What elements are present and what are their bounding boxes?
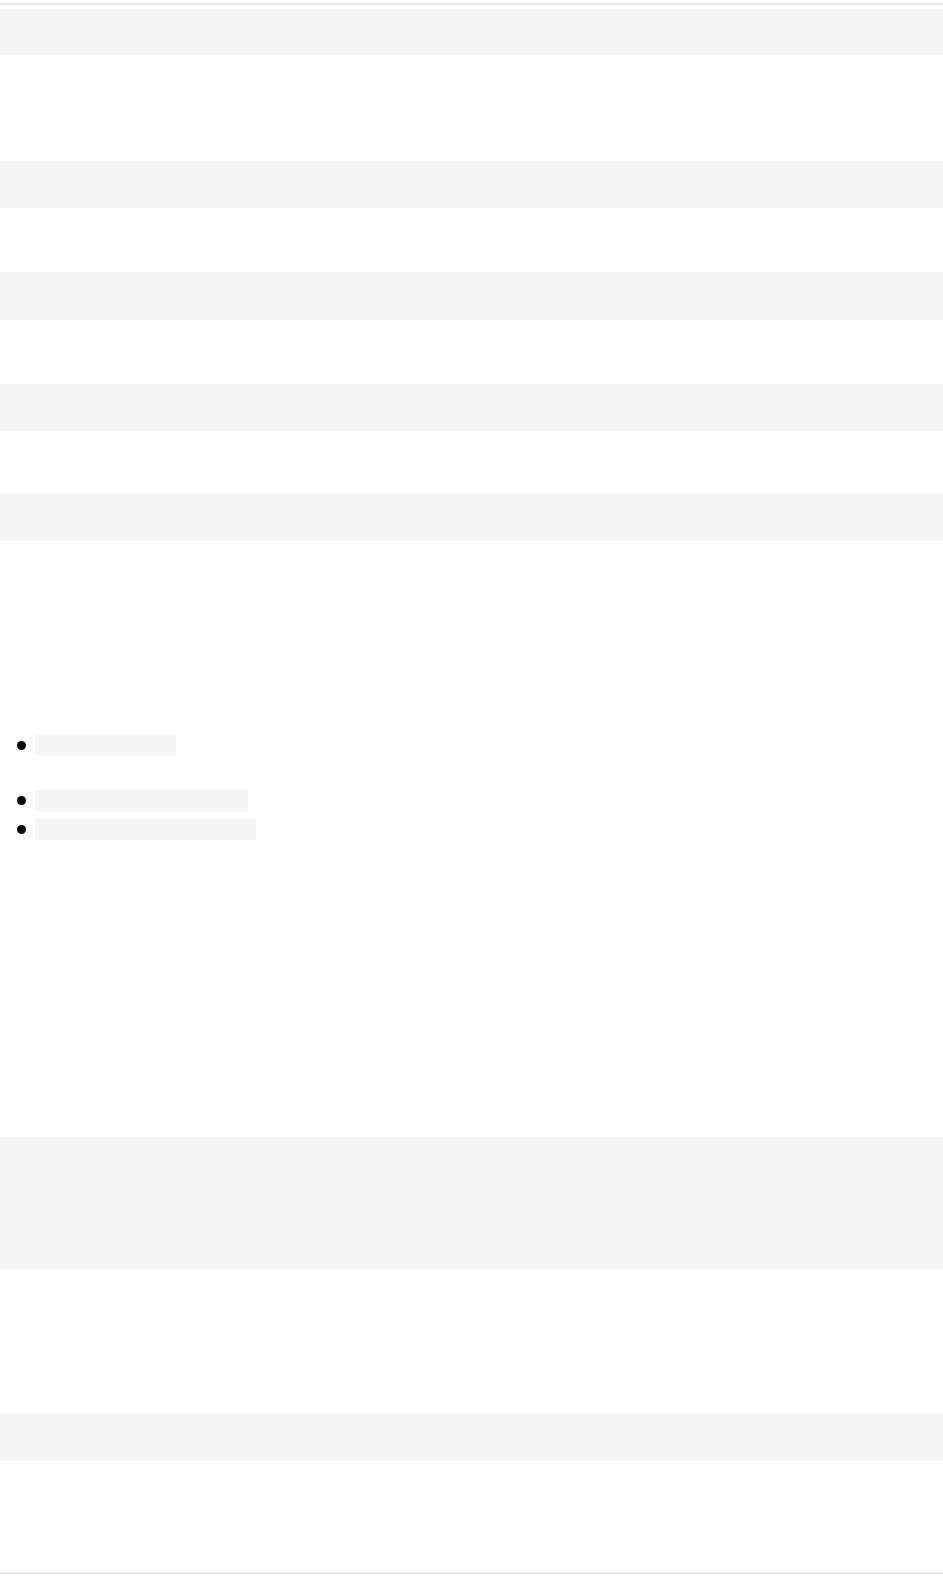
button[interactable]: Loading list item 3 — [0, 818, 943, 840]
button[interactable]: Loading list item 2 — [0, 790, 943, 811]
button[interactable]: Loading list item 1 — [0, 735, 943, 755]
